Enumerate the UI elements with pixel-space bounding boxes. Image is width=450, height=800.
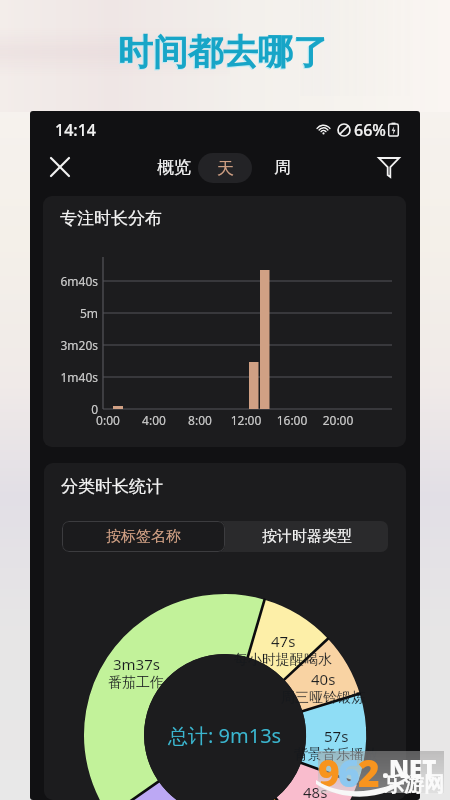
staticText: 5m [44, 305, 98, 321]
staticText: 48s [303, 782, 328, 800]
staticText: 3m37s [113, 654, 160, 674]
staticText: 天 [217, 158, 234, 179]
staticText: 周 [274, 157, 291, 178]
button[interactable]: Close [41, 148, 79, 186]
staticText: 47s [271, 631, 296, 651]
button[interactable]: 周 [257, 152, 307, 183]
staticText: 时间都去哪了 [118, 30, 328, 74]
staticText: 周三哑铃锻炼 [281, 689, 365, 707]
staticText: 概览 [157, 157, 191, 178]
staticText: 1m40s [44, 369, 98, 385]
staticText: 番茄工作 [108, 674, 164, 692]
button[interactable]: 按计时器类型 [225, 521, 388, 552]
staticText: 20:00 [316, 412, 360, 428]
staticText: 按计时器类型 [262, 527, 352, 546]
staticText: 3m20s [44, 337, 98, 353]
staticText: 按标签名称 [106, 527, 181, 546]
staticText: 乐游网 [384, 772, 444, 797]
staticText: 66% [354, 119, 386, 141]
staticText: 0:00 [86, 412, 130, 428]
button[interactable]: 按标签名称 [62, 521, 225, 552]
staticText: 14:14 [55, 119, 96, 141]
staticText: 专注时长分布 [60, 208, 162, 229]
staticText: 0 [44, 401, 98, 417]
staticText: 57s [324, 726, 349, 746]
staticText: 4:00 [132, 412, 176, 428]
staticText: 每小时提醒喝水 [234, 651, 332, 669]
staticText: 分类时长统计 [61, 476, 163, 497]
staticText: 2 [358, 747, 380, 797]
button[interactable]: 概览 [144, 152, 204, 183]
button[interactable]: 天 [198, 153, 252, 183]
staticText: 6m40s [44, 273, 98, 289]
staticText: 8:00 [178, 412, 222, 428]
staticText: 总计: 9m13s [168, 722, 282, 749]
staticText: 9 [318, 747, 340, 797]
button[interactable]: Filter [370, 148, 408, 186]
staticText: 时间都去哪了 [117, 31, 327, 75]
staticText: 12:00 [224, 412, 268, 428]
staticText: 16:00 [270, 412, 314, 428]
staticText: 40s [311, 669, 336, 689]
staticText: 6 [338, 747, 360, 797]
staticText: .NET [382, 752, 437, 785]
staticText: 背景音乐播放 [294, 746, 378, 764]
